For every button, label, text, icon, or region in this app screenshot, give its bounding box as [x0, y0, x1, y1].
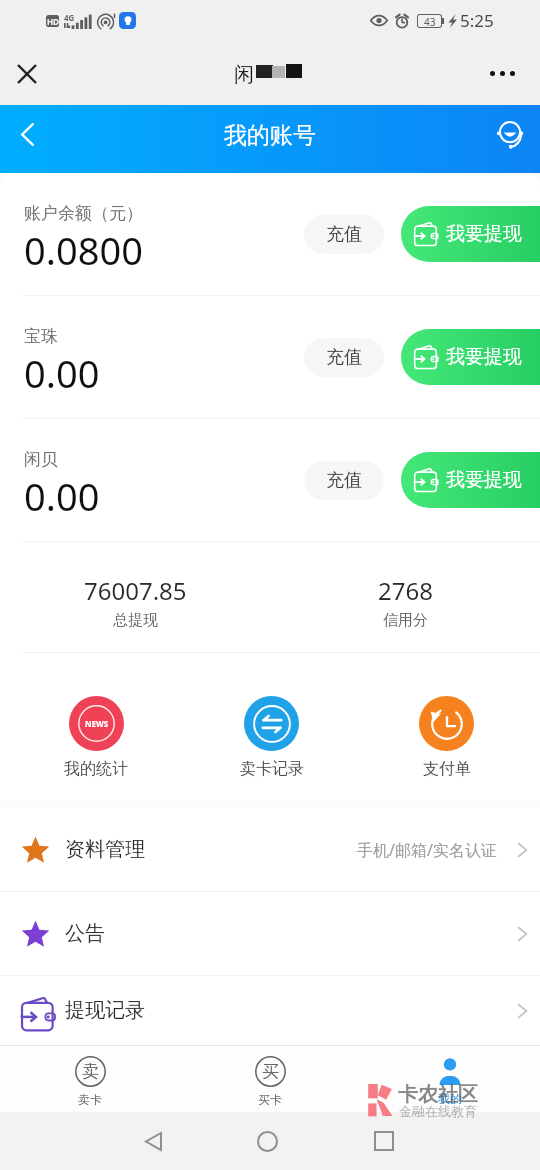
staticText: 手机/邮箱/实名认证 [357, 839, 497, 861]
button[interactable]: 卖卡记录 [184, 696, 359, 779]
button[interactable]: 我要提现 [401, 329, 540, 385]
staticText: 支付单 [423, 759, 471, 779]
button[interactable]: Back [130, 1118, 176, 1164]
staticText: 76007.85 [84, 574, 187, 607]
button[interactable]: 充值 [304, 215, 384, 254]
staticText: HD [47, 16, 59, 27]
button[interactable]: More options [490, 58, 518, 88]
button[interactable]: 卖 [0, 1046, 180, 1112]
staticText: 账户余额（元） [24, 203, 143, 224]
button[interactable]: 我的 [360, 1046, 540, 1112]
staticText: 卡农社区 [398, 1082, 478, 1107]
staticText: 卖 [82, 1061, 99, 1082]
button[interactable]: 充值 [304, 338, 384, 377]
staticText: 0.00 [24, 470, 100, 522]
staticText: 提现记录 [65, 998, 145, 1023]
button[interactable]: 支付单 [359, 696, 534, 779]
staticText: 充值 [326, 223, 362, 246]
button[interactable]: 提现记录 [0, 976, 540, 1045]
button[interactable]: Back [5, 112, 49, 156]
button[interactable]: 买 [180, 1046, 360, 1112]
staticText: 我要提现 [446, 345, 522, 369]
staticText: 我要提现 [446, 468, 522, 492]
button[interactable]: 充值 [304, 461, 384, 500]
staticText: 5:25 [460, 9, 494, 32]
staticText: 充值 [326, 346, 362, 369]
staticText: 43 [424, 15, 436, 27]
staticText: NEWS [85, 718, 109, 729]
button[interactable]: 我要提现 [401, 206, 540, 262]
button[interactable]: Recents [361, 1118, 407, 1164]
staticText: 宝珠 [24, 326, 58, 347]
staticText: 卖卡 [78, 1092, 102, 1107]
button[interactable]: Home [244, 1118, 290, 1164]
staticText: 我的 [438, 1091, 462, 1106]
staticText: 总提现 [113, 611, 158, 630]
staticText: 买 [262, 1061, 279, 1082]
staticText: 我的账号 [224, 121, 316, 150]
staticText: 金融在线教育 [399, 1103, 477, 1119]
button[interactable]: 76007.85 [0, 574, 270, 630]
staticText: 资料管理 [65, 837, 145, 862]
staticText: 2768 [378, 574, 433, 607]
button[interactable]: 公告 [0, 892, 540, 975]
staticText: 我的统计 [64, 759, 128, 779]
button[interactable]: Close [5, 52, 49, 96]
staticText: 4G [64, 12, 75, 23]
staticText: 充值 [326, 469, 362, 492]
staticText: 闲 [234, 62, 254, 87]
button[interactable]: 2768 [270, 574, 540, 630]
staticText: 0.0800 [24, 224, 143, 276]
staticText: 公告 [65, 921, 105, 946]
staticText: 买卡 [258, 1092, 282, 1107]
button[interactable]: NEWS [8, 696, 184, 779]
staticText: 0.00 [24, 347, 100, 399]
button[interactable]: Customer service [488, 112, 532, 156]
button[interactable]: 资料管理 [0, 808, 540, 891]
staticText: 闲贝 [24, 449, 58, 470]
staticText: 信用分 [383, 611, 428, 630]
button[interactable]: 我要提现 [401, 452, 540, 508]
staticText: 卖卡记录 [240, 759, 304, 779]
staticText: 我要提现 [446, 222, 522, 246]
